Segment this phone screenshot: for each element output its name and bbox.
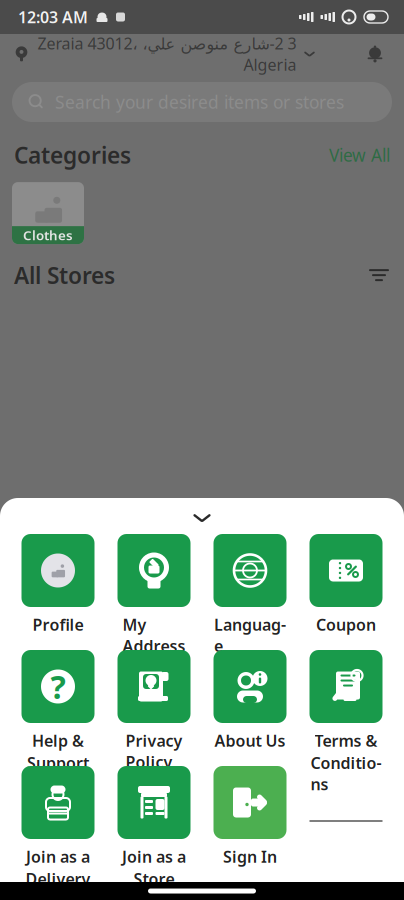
button[interactable]: ? [21, 650, 94, 760]
staticText: Profile [32, 614, 83, 635]
staticText: Sign In [223, 846, 277, 867]
button[interactable]: Close menu [174, 506, 230, 530]
staticText: My Address [122, 614, 185, 656]
staticText: Search your desired items or stores [55, 90, 344, 113]
button[interactable]: Notifications [360, 39, 390, 69]
button[interactable]: About Us [213, 650, 286, 760]
staticText: Conditions [310, 752, 381, 795]
staticText: ? [50, 665, 65, 708]
staticText: Categories [14, 140, 131, 170]
staticText: Join as a [26, 846, 90, 867]
button[interactable]: Terms & [309, 650, 382, 760]
staticText: Language [214, 614, 286, 656]
staticText: Terms & [314, 730, 377, 751]
staticText: Clothes [23, 226, 73, 244]
button[interactable]: Language [213, 534, 286, 644]
staticText: Privacy Policy [125, 730, 182, 772]
button[interactable]: Sign In [213, 766, 286, 876]
staticText: Help & [32, 730, 84, 751]
staticText: About Us [214, 730, 285, 751]
staticText: View All [329, 143, 390, 166]
staticText: 3 2-شارع منوصن علي، Zeraia 43012، Algeri… [37, 33, 296, 75]
staticText: Support [27, 752, 89, 773]
staticText: Coupon [316, 614, 376, 635]
staticText: 12:03 AM [18, 6, 88, 28]
staticText: Delivery Man [25, 868, 90, 900]
button[interactable]: My Address [117, 534, 190, 644]
button[interactable]: Profile [21, 534, 94, 644]
button[interactable]: Coupon [309, 534, 382, 644]
button[interactable]: Privacy Policy [117, 650, 190, 760]
staticText: All Stores [14, 260, 115, 290]
staticText: Store [133, 868, 174, 889]
button[interactable]: Join as a [21, 766, 94, 876]
staticText: Join as a [122, 846, 186, 867]
button[interactable]: Join as a [117, 766, 190, 876]
